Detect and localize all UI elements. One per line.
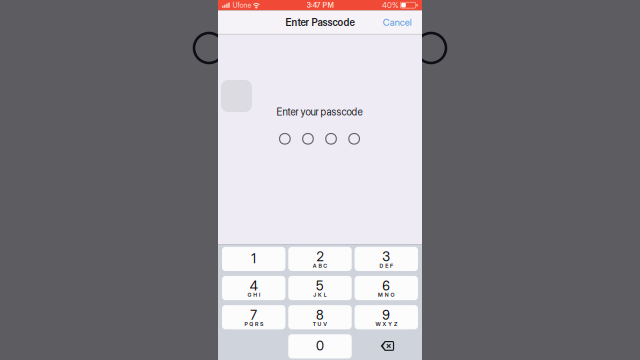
staticText: 6: [382, 278, 390, 294]
staticText: 5: [316, 278, 324, 294]
staticText: TUV: [313, 321, 327, 327]
staticText: PQRS: [244, 321, 263, 327]
staticText: GHI: [247, 292, 260, 298]
button[interactable]: 4: [222, 276, 285, 300]
staticText: 40%: [382, 0, 399, 10]
staticText: 3:47 PM: [306, 1, 333, 9]
button[interactable]: 0: [288, 334, 352, 358]
staticText: 1: [251, 250, 256, 266]
button[interactable]: Delete: [355, 334, 418, 358]
staticText: 3: [382, 249, 390, 264]
staticText: Cancel: [383, 17, 412, 28]
button[interactable]: 2: [288, 247, 352, 271]
button[interactable]: 5: [288, 276, 352, 300]
staticText: 7: [250, 307, 257, 323]
button[interactable]: 3: [355, 247, 418, 271]
staticText: 0: [316, 338, 324, 354]
button[interactable]: 8: [288, 305, 352, 329]
button[interactable]: 6: [355, 276, 418, 300]
staticText: Enter your passcode: [276, 106, 362, 118]
staticText: 4: [250, 278, 258, 294]
staticText: 2: [316, 249, 323, 264]
button[interactable]: 1: [222, 247, 285, 271]
staticText: WXYZ: [376, 321, 397, 327]
staticText: DEF: [379, 262, 393, 269]
staticText: JKL: [313, 292, 327, 298]
staticText: Ufone: [232, 1, 251, 9]
button[interactable]: Cancel: [379, 12, 416, 33]
staticText: Enter Passcode: [285, 16, 354, 28]
staticText: 8: [316, 307, 324, 323]
staticText: ABC: [313, 262, 327, 269]
button[interactable]: 7: [222, 305, 285, 329]
button[interactable]: 9: [355, 305, 418, 329]
staticText: MNO: [378, 292, 395, 298]
staticText: 9: [382, 307, 390, 323]
